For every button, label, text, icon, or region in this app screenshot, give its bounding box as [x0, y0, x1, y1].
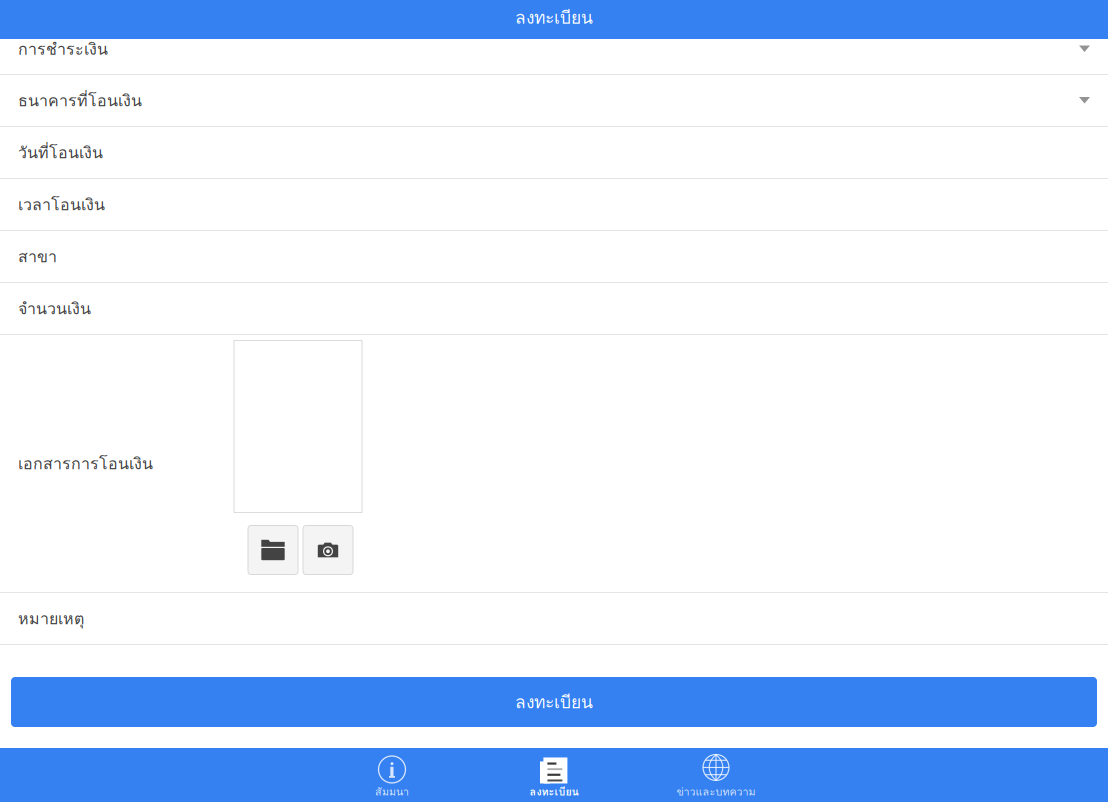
staticText: การชำระเงิน [18, 37, 108, 61]
staticText: หมายเหตุ [18, 606, 84, 631]
button[interactable]: สัมมนา [311, 748, 473, 802]
button[interactable]: หมายเหตุ [0, 593, 1108, 645]
button[interactable]: Choose file [248, 525, 298, 574]
staticText: สัมมนา [375, 783, 409, 800]
button[interactable]: ลงทะเบียน [473, 748, 635, 802]
button[interactable]: สาขา [0, 231, 1108, 283]
button[interactable]: จำนวนเงิน [0, 283, 1108, 335]
staticText: เวลาโอนเงิน [18, 192, 105, 217]
button[interactable]: วันที่โอนเงิน [0, 127, 1108, 179]
staticText: ธนาคารที่โอนเงิน [18, 88, 142, 113]
staticText: ลงทะเบียน [529, 783, 578, 800]
staticText: วันที่โอนเงิน [18, 140, 103, 165]
button[interactable]: ลงทะเบียน [11, 677, 1097, 727]
staticText: ข่าวและบทความ [676, 783, 755, 800]
button[interactable]: การชำระเงิน [0, 39, 1108, 75]
button[interactable]: เวลาโอนเงิน [0, 179, 1108, 231]
staticText: เอกสารการโอนเงิน [18, 451, 153, 476]
staticText: ลงทะเบียน [515, 689, 593, 715]
button[interactable]: Take photo [303, 525, 353, 574]
button[interactable]: ข่าวและบทความ [635, 748, 797, 802]
staticText: จำนวนเงิน [18, 296, 91, 321]
staticText: สาขา [18, 244, 57, 269]
staticText: ลงทะเบียน [515, 4, 593, 31]
button[interactable]: ธนาคารที่โอนเงิน [0, 75, 1108, 127]
